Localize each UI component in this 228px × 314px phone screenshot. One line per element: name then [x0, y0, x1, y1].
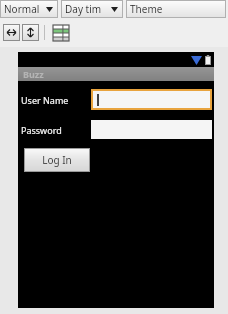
button[interactable]: Normal [0, 0, 58, 18]
button[interactable]: User Name [93, 91, 210, 108]
staticText: Buzz [23, 68, 44, 80]
staticText: User Name [21, 94, 91, 106]
staticText: Password [21, 124, 91, 136]
button[interactable]: Log In [24, 148, 90, 172]
staticText: Day tim [65, 2, 102, 16]
staticText: Theme [130, 2, 163, 16]
button[interactable]: Day tim [61, 0, 123, 18]
staticText: Normal [4, 2, 40, 16]
button[interactable]: Theme [126, 0, 226, 18]
staticText: Log In [42, 153, 72, 167]
button[interactable]: Fit width [3, 24, 20, 41]
button[interactable]: Fit height [22, 24, 39, 41]
button[interactable]: Show layout table [53, 25, 69, 41]
